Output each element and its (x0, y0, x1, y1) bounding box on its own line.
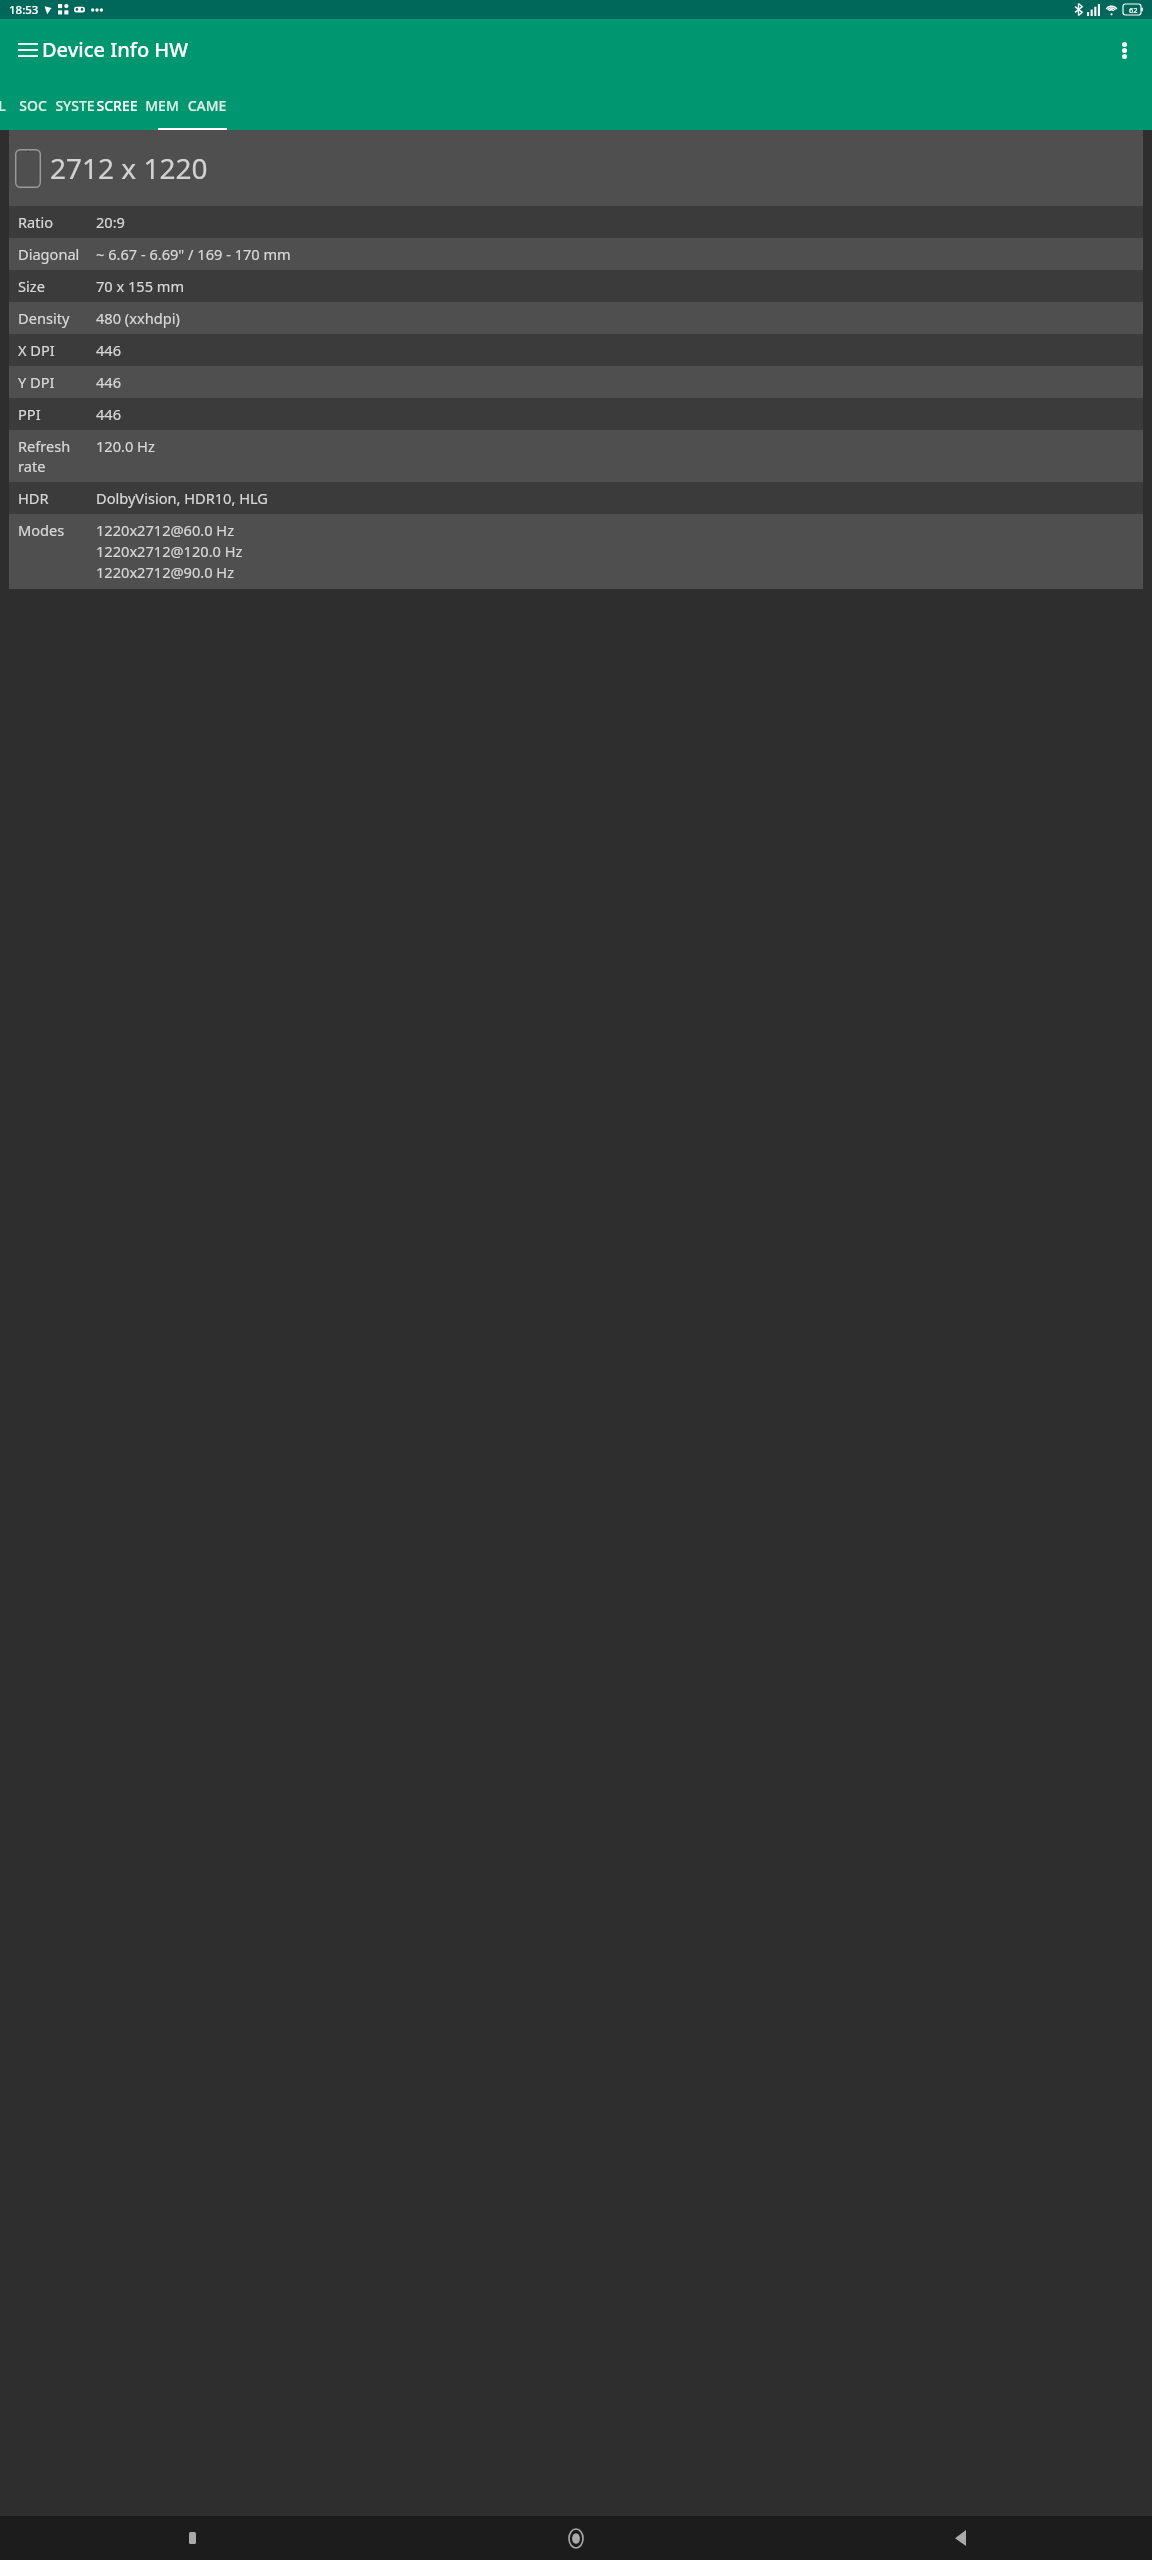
staticText: Device Info HW (42, 36, 189, 63)
staticText: 18:53 (9, 2, 39, 18)
staticText: X DPI (18, 340, 96, 360)
button[interactable]: CAMERA (186, 80, 228, 130)
staticText: Y DPI (18, 372, 96, 392)
staticText: 120.0 Hz (96, 436, 155, 456)
button[interactable]: Home (384, 2516, 768, 2560)
staticText: 1220x2712@60.0 Hz (96, 520, 235, 540)
button[interactable]: Modes (9, 514, 1143, 589)
staticText: 1220x2712@120.0 Hz (96, 541, 243, 561)
button[interactable]: Diagonal (9, 238, 1143, 270)
staticText: 480 (xxhdpi) (96, 308, 180, 328)
staticText: SYSTEM (54, 96, 96, 115)
button[interactable]: Back (768, 2516, 1152, 2560)
staticText: MEMORY (141, 96, 183, 115)
button[interactable]: SYSTEM (54, 80, 96, 130)
staticText: Diagonal (18, 244, 96, 264)
button[interactable]: AL (0, 80, 18, 130)
staticText: Density (18, 308, 96, 328)
staticText: HDR (18, 488, 96, 508)
staticText: 446 (96, 340, 122, 360)
button[interactable]: HDR (9, 482, 1143, 514)
staticText: 62 (1129, 5, 1138, 15)
staticText: SCREEN (96, 96, 138, 115)
staticText: CAMERA (186, 96, 228, 115)
staticText: Size (18, 276, 96, 296)
button[interactable]: Refresh rate (9, 430, 1143, 482)
staticText: 2712 x 1220 (50, 149, 208, 187)
button[interactable]: X DPI (9, 334, 1143, 366)
staticText: DolbyVision, HDR10, HLG (96, 488, 268, 508)
button[interactable]: Ratio (9, 206, 1143, 238)
staticText: AL (0, 96, 6, 115)
staticText: ~ 6.67 - 6.69" / 169 - 170 mm (96, 244, 291, 264)
staticText: 446 (96, 372, 122, 392)
button[interactable]: MEMORY (141, 80, 183, 130)
button[interactable]: Open navigation menu (4, 26, 52, 74)
staticText: 1220x2712@90.0 Hz (96, 562, 235, 582)
staticText: 20:9 (96, 212, 125, 232)
staticText: Modes (18, 520, 96, 540)
button[interactable]: Density (9, 302, 1143, 334)
button[interactable]: Recent apps (0, 2516, 384, 2560)
staticText: Refresh rate (18, 436, 96, 476)
staticText: Ratio (18, 212, 96, 232)
button[interactable]: SOC (12, 80, 54, 130)
staticText: SOC (19, 96, 47, 115)
button[interactable]: SCREEN (96, 80, 138, 130)
button[interactable]: Size (9, 270, 1143, 302)
button[interactable]: Y DPI (9, 366, 1143, 398)
staticText: 446 (96, 404, 122, 424)
button[interactable]: More options (1100, 26, 1148, 74)
button[interactable]: PPI (9, 398, 1143, 430)
staticText: PPI (18, 404, 96, 424)
staticText: 70 x 155 mm (96, 276, 185, 296)
